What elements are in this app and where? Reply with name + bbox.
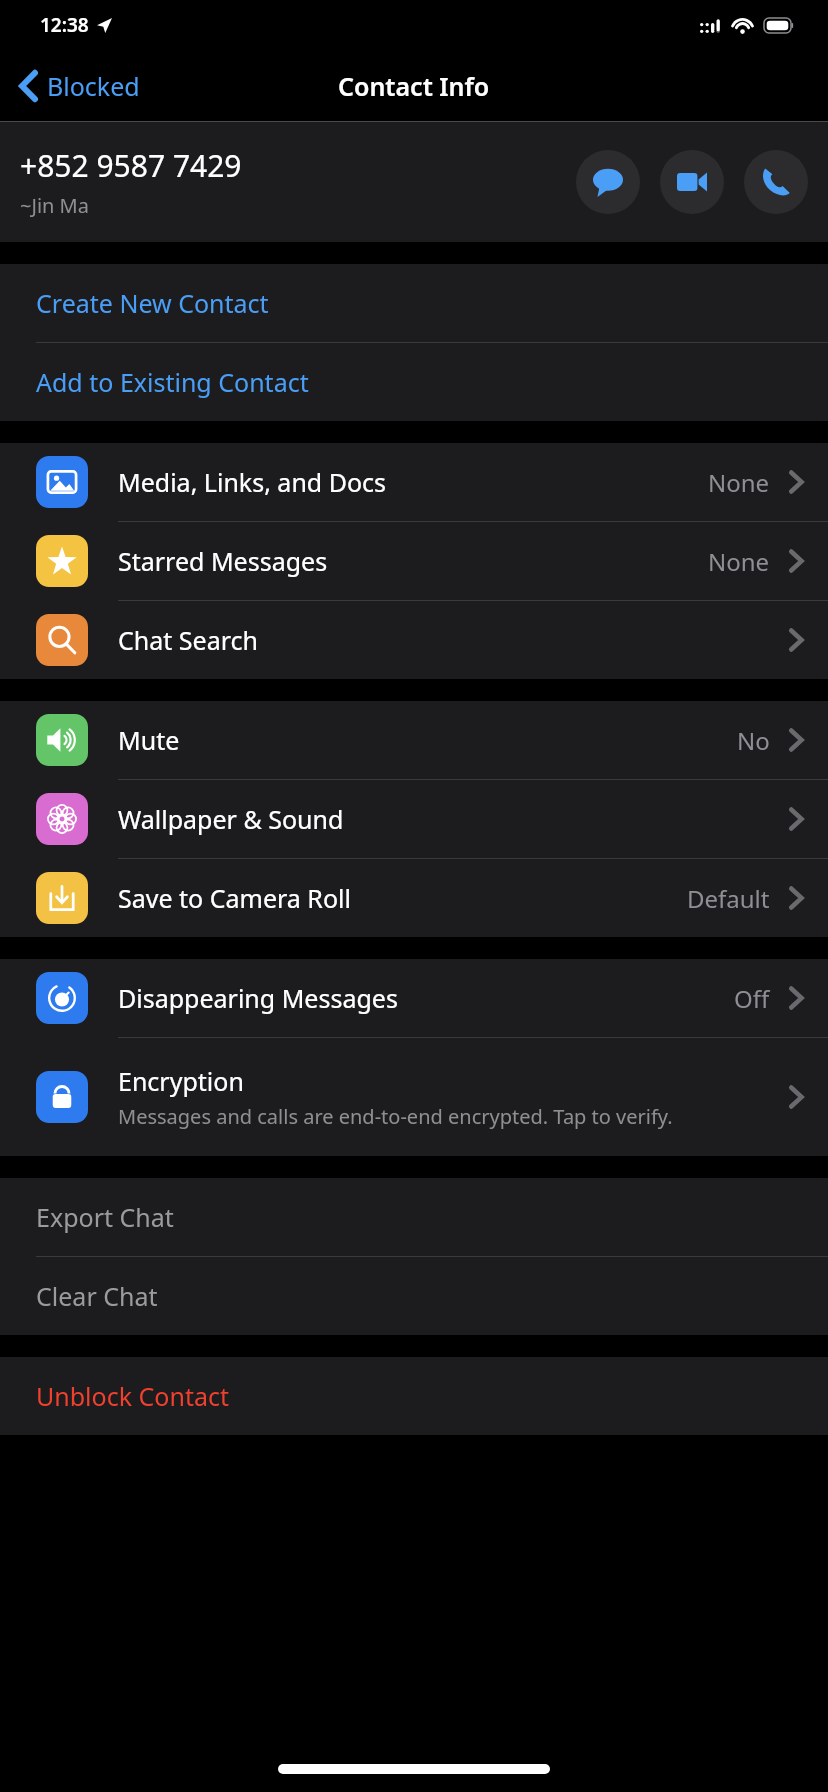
button[interactable]: Blocked bbox=[0, 59, 156, 113]
button[interactable]: Mute bbox=[0, 701, 828, 779]
staticText: Disappearing Messages bbox=[118, 981, 734, 1015]
button[interactable]: Message bbox=[576, 150, 640, 214]
staticText: Add to Existing Contact bbox=[36, 365, 309, 399]
staticText: Default bbox=[687, 882, 770, 915]
button[interactable]: Export Chat bbox=[0, 1178, 828, 1256]
staticText: Off bbox=[734, 982, 770, 1015]
button[interactable]: Wallpaper & Sound bbox=[0, 780, 828, 858]
button[interactable]: Clear Chat bbox=[0, 1257, 828, 1335]
button[interactable]: Create New Contact bbox=[0, 264, 828, 342]
staticText: Media, Links, and Docs bbox=[118, 465, 708, 499]
staticText: Mute bbox=[118, 723, 737, 757]
staticText: +852 9587 7429 bbox=[20, 145, 242, 186]
button[interactable]: Media, Links, and Docs bbox=[0, 443, 828, 521]
staticText: Chat Search bbox=[118, 623, 788, 657]
staticText: No bbox=[737, 724, 770, 757]
staticText: 12:38 bbox=[40, 12, 89, 38]
staticText: Clear Chat bbox=[36, 1279, 158, 1313]
staticText: Starred Messages bbox=[118, 544, 708, 578]
staticText: Unblock Contact bbox=[36, 1379, 229, 1413]
staticText: None bbox=[708, 545, 770, 578]
button[interactable]: Chat Search bbox=[0, 601, 828, 679]
button[interactable]: Encryption bbox=[0, 1038, 828, 1156]
button[interactable]: Add to Existing Contact bbox=[0, 343, 828, 421]
staticText: Save to Camera Roll bbox=[118, 881, 687, 915]
staticText: Messages and calls are end-to-end encryp… bbox=[118, 1103, 673, 1130]
button[interactable]: Unblock Contact bbox=[0, 1357, 828, 1435]
staticText: Wallpaper & Sound bbox=[118, 802, 788, 836]
staticText: ~Jin Ma bbox=[20, 192, 89, 219]
button[interactable]: Video call bbox=[660, 150, 724, 214]
button[interactable]: Disappearing Messages bbox=[0, 959, 828, 1037]
staticText: Encryption bbox=[118, 1064, 244, 1098]
staticText: Contact Info bbox=[338, 69, 490, 103]
staticText: None bbox=[708, 466, 770, 499]
staticText: Blocked bbox=[47, 69, 140, 103]
button[interactable]: Voice call bbox=[744, 150, 808, 214]
button[interactable]: Save to Camera Roll bbox=[0, 859, 828, 937]
staticText: Export Chat bbox=[36, 1200, 174, 1234]
staticText: Create New Contact bbox=[36, 286, 269, 320]
button[interactable]: Starred Messages bbox=[0, 522, 828, 600]
